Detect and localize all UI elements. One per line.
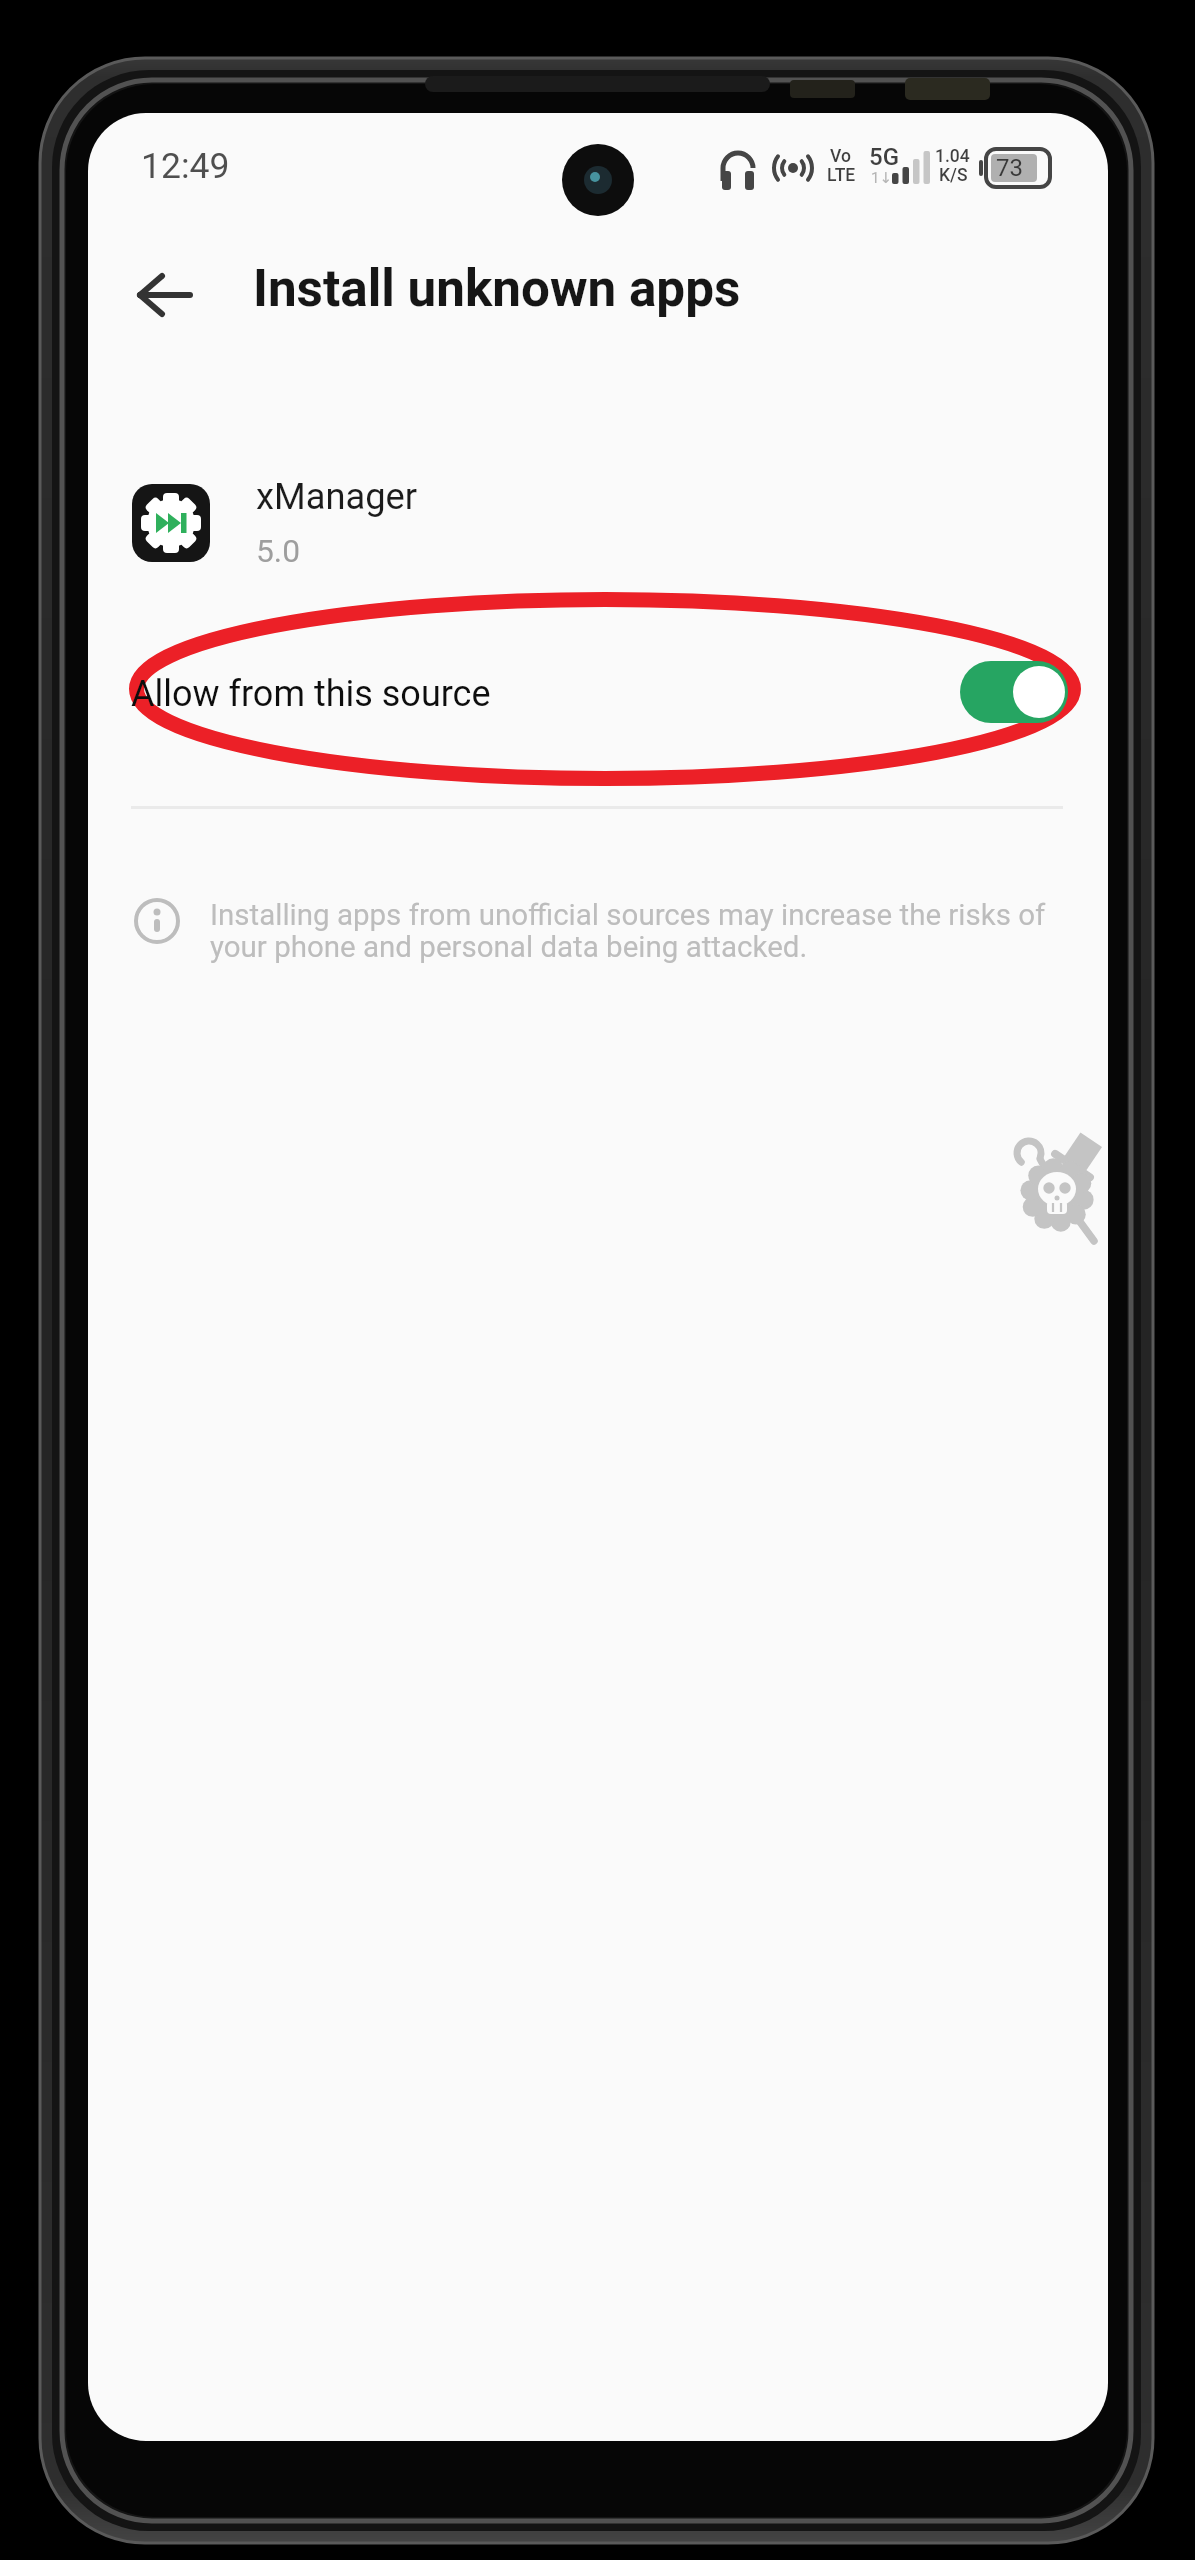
staticText: K/S (939, 165, 968, 186)
staticText: Allow from this source (131, 673, 491, 715)
staticText: LTE (827, 165, 856, 186)
staticText: 5G (869, 143, 899, 171)
staticText: your phone and personal data being attac… (210, 930, 808, 965)
staticText: Vo (830, 146, 851, 167)
staticText: 1↓ (871, 169, 892, 187)
staticText: 1.04 (935, 146, 970, 167)
staticText: 73 (996, 154, 1023, 182)
staticText: 5.0 (256, 532, 301, 569)
staticText: 12:49 (141, 145, 230, 187)
button[interactable]: Allow from this source (131, 653, 1063, 733)
button[interactable] (125, 258, 217, 332)
staticText: xManager (256, 475, 418, 518)
staticText: Install unknown apps (253, 258, 741, 318)
staticText: Installing apps from unofficial sources … (210, 898, 1046, 933)
button[interactable]: xManager (132, 473, 1064, 588)
